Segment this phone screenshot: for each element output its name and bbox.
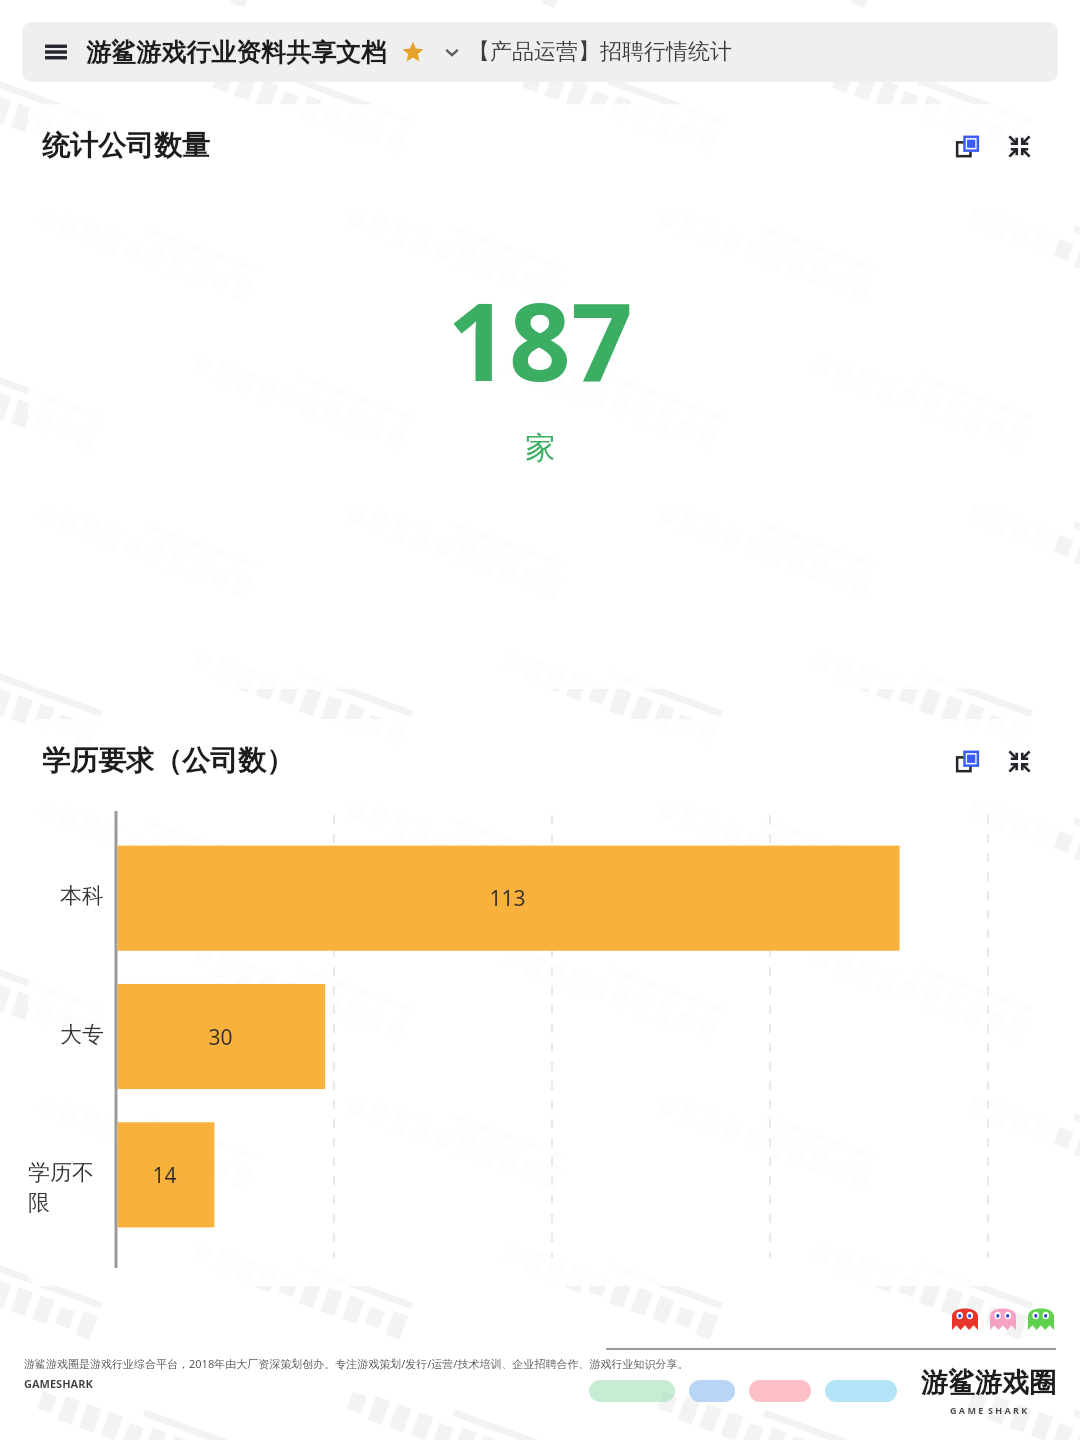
button[interactable]: 统计公司数量	[28, 104, 1052, 689]
staticText: 游鲨游戏圈	[921, 1366, 1056, 1400]
other: Ghost	[990, 1304, 1016, 1330]
staticText: 游鲨游戏行业资料共享文档	[86, 37, 386, 68]
staticText: GAMESHARK	[24, 1376, 93, 1391]
button[interactable]: Menu	[22, 22, 1058, 82]
button[interactable]: Collapse	[1002, 744, 1036, 778]
staticText: 14	[152, 1161, 177, 1190]
staticText: 游鲨游戏圈是游戏行业综合平台，2018年由大厂资深策划创办。专注游戏策划/发行/…	[24, 1356, 689, 1371]
button[interactable]: More	[438, 38, 466, 66]
staticText: 187	[447, 266, 633, 413]
staticText: G A M E S H A R K	[950, 1404, 1028, 1416]
button[interactable]: Collapse	[1002, 129, 1036, 163]
button[interactable]: 学历要求（公司数）	[28, 719, 1052, 1286]
staticText: 大专	[60, 1021, 104, 1049]
staticText: 学历不限	[28, 1159, 104, 1217]
other: Ghost	[1028, 1304, 1054, 1330]
staticText: 家	[525, 429, 555, 467]
other: Ghost	[952, 1304, 978, 1330]
staticText: 本科	[60, 882, 104, 910]
staticText: 30	[208, 1023, 233, 1052]
button[interactable]: Copy	[950, 744, 984, 778]
staticText: 113	[489, 884, 526, 913]
staticText: 学历要求（公司数）	[42, 743, 294, 778]
button[interactable]: Copy	[950, 129, 984, 163]
button[interactable]: Menu	[38, 34, 74, 70]
staticText: 【产品运营】招聘行情统计	[468, 38, 732, 66]
button[interactable]: Favorite	[398, 37, 428, 67]
staticText: 统计公司数量	[42, 128, 210, 163]
